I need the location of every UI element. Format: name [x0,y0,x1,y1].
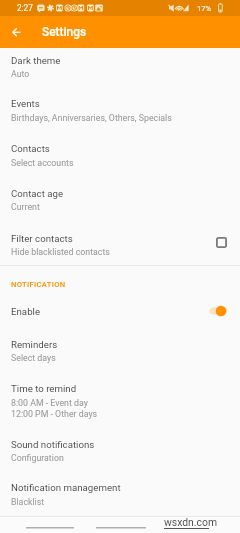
button[interactable] [0,324,240,369]
staticText: Sound notifications [11,439,95,450]
staticText: Contacts [11,143,50,154]
button[interactable] [0,369,240,424]
button[interactable]: Hide blacklisted contacts [216,237,227,248]
button[interactable]: Hide blacklisted contacts [0,212,240,258]
button[interactable] [0,49,240,78]
staticText: 2:27 [17,3,33,13]
button[interactable] [0,298,240,324]
staticText: 17% [197,4,212,13]
button[interactable] [0,122,240,167]
staticText: Dark theme [11,55,61,66]
staticText: Select days [11,353,56,363]
staticText: wsxdn.com [164,516,218,528]
staticText: Notification management [11,482,121,493]
staticText: Current [11,202,40,212]
staticText: Enable [11,306,41,317]
staticText: Birthdays, Anniversaries, Others, Specia… [11,113,172,123]
staticText: Time to remind [11,383,77,394]
staticText: Settings [42,25,87,39]
staticText: Hide blacklisted contacts [11,247,110,257]
staticText: 8:00 AM - Event day [11,398,88,408]
button[interactable] [0,424,240,468]
staticText: Select accounts [11,158,74,168]
button[interactable]: Home [90,519,152,533]
staticText: 12:00 PM - Other days [11,409,98,419]
staticText: Configuration [11,453,64,463]
staticText: NOTIFICATION [11,280,66,289]
staticText: Reminders [11,339,58,350]
staticText: Auto [11,69,30,79]
staticText: Events [11,98,40,109]
staticText: Contact age [11,188,64,199]
button[interactable] [0,167,240,212]
button[interactable] [0,78,240,122]
button[interactable]: Back [6,22,26,42]
staticText: Filter contacts [11,233,73,244]
button[interactable]: Recents [10,519,90,533]
button[interactable] [0,468,240,512]
staticText: Blacklist [11,497,45,507]
